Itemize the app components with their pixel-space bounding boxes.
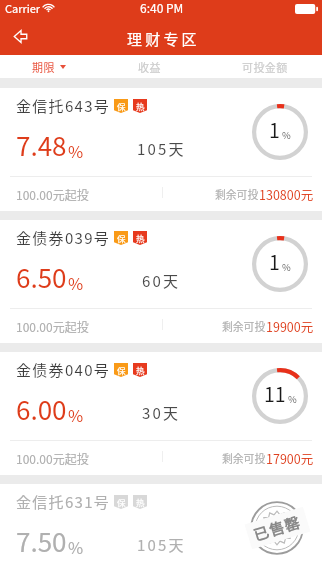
staticText: 19900元 — [266, 317, 314, 335]
staticText: 6:40 PM — [140, 0, 184, 16]
staticText: 1 — [269, 115, 280, 143]
staticText: % — [68, 139, 84, 163]
staticText: % — [68, 271, 84, 295]
staticText: 105天 — [137, 534, 186, 556]
staticText: 30天 — [142, 402, 181, 424]
button[interactable]: 1 — [0, 88, 322, 211]
staticText: 收益 — [138, 59, 161, 75]
staticText: 热 — [136, 496, 145, 508]
staticText: 6.00 — [16, 390, 67, 428]
staticText: 金债券039号 — [16, 227, 111, 249]
staticText: % — [282, 128, 291, 142]
button[interactable]: 可投金额 — [230, 55, 300, 78]
staticText: 金信托643号 — [16, 95, 111, 117]
staticText: Carrier — [5, 0, 41, 16]
staticText: 已售罄 — [251, 510, 304, 546]
button[interactable]: Back — [4, 20, 36, 52]
staticText: 保 — [117, 100, 126, 112]
button[interactable]: 已售罄 — [0, 484, 322, 572]
staticText: 期限 — [32, 59, 55, 75]
staticText: 1 — [269, 247, 280, 275]
staticText: 7.48 — [16, 126, 67, 164]
staticText: 60天 — [142, 270, 181, 292]
staticText: 11 — [264, 379, 286, 407]
staticText: 100.00元起投 — [16, 450, 89, 467]
staticText: 保 — [117, 496, 126, 508]
staticText: 7.50 — [16, 522, 67, 560]
staticText: 105天 — [137, 138, 186, 160]
staticText: % — [282, 260, 291, 274]
staticText: 保 — [117, 232, 126, 244]
staticText: 100.00元起投 — [16, 318, 89, 335]
staticText: 保 — [117, 364, 126, 376]
staticText: 剩余可投 — [215, 186, 259, 202]
button[interactable]: 期限 — [24, 55, 74, 78]
staticText: 100.00元起投 — [16, 186, 89, 203]
button[interactable]: 1 — [0, 220, 322, 343]
staticText: % — [288, 392, 297, 406]
staticText: 金债券040号 — [16, 359, 111, 381]
staticText: 理财专区 — [127, 28, 200, 50]
staticText: 热 — [136, 232, 145, 244]
button[interactable]: 11 — [0, 352, 322, 475]
button[interactable]: 收益 — [124, 55, 174, 78]
staticText: 金信托631号 — [16, 491, 111, 513]
staticText: 可投金额 — [242, 59, 288, 75]
staticText: 130800元 — [259, 185, 314, 203]
staticText: 剩余可投 — [222, 450, 266, 466]
staticText: % — [68, 403, 84, 427]
staticText: 6.50 — [16, 258, 67, 296]
staticText: 17900元 — [266, 449, 314, 467]
staticText: 热 — [136, 100, 145, 112]
staticText: 剩余可投 — [222, 318, 266, 334]
staticText: % — [68, 535, 84, 559]
staticText: 热 — [136, 364, 145, 376]
